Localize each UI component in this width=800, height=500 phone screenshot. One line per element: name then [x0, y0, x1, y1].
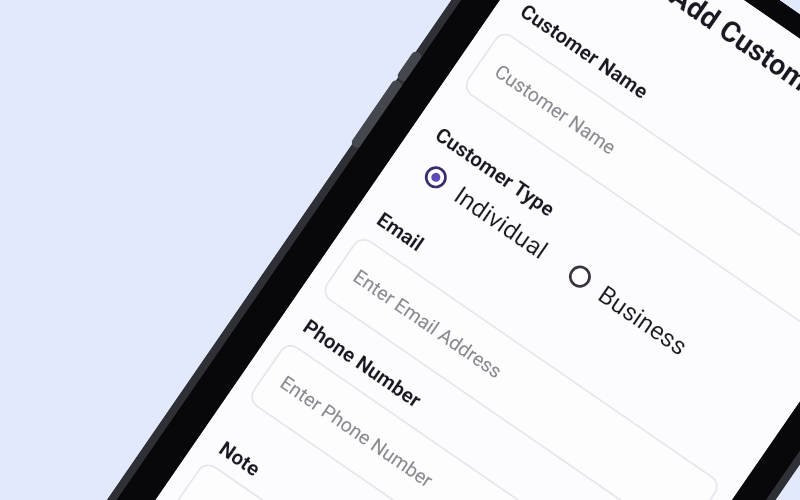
button[interactable]: Enter Email Address [319, 234, 723, 500]
staticText: Phone Number [299, 314, 426, 412]
staticText: Email [372, 207, 429, 257]
staticText: Individual [449, 181, 553, 265]
staticText: Add Customer [664, 0, 800, 113]
button[interactable]: Individual [417, 157, 555, 267]
staticText: Enter Phone Number [276, 371, 437, 492]
other: Volume down [350, 78, 404, 150]
button[interactable]: Business [561, 256, 695, 363]
staticText: Customer Type [431, 122, 560, 222]
staticText: Customer Name [516, 0, 653, 104]
staticText: Business [593, 280, 693, 362]
button[interactable]: Customer Name [460, 29, 800, 338]
staticText: Note [215, 436, 265, 482]
button[interactable]: Enter Note [120, 459, 567, 500]
other: Volume up [396, 50, 424, 83]
button[interactable]: Enter Phone Number [246, 340, 650, 500]
staticText: Customer Name [490, 60, 620, 159]
staticText: Enter Email Address [349, 265, 506, 383]
